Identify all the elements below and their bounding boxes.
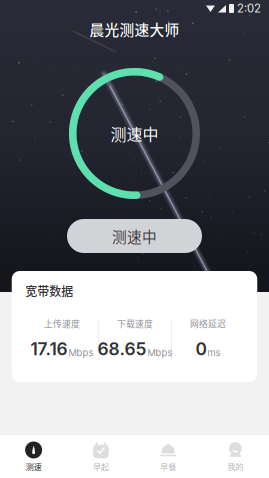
staticText: 测速中 [110, 122, 158, 145]
button[interactable]: 早起 [67, 435, 134, 478]
staticText: 测速中 [112, 225, 157, 247]
staticText: 测速 [26, 461, 42, 472]
staticText: 我的 [227, 461, 243, 472]
staticText: Mbps [68, 347, 93, 358]
staticText: ms [208, 347, 221, 358]
staticText: 68.65 [97, 338, 146, 359]
button[interactable]: 测速 [0, 435, 67, 478]
staticText: 2:02 [237, 2, 261, 15]
button[interactable]: 我的 [202, 435, 269, 478]
staticText: 早起 [93, 461, 109, 472]
staticText: 0 [196, 338, 207, 359]
staticText: 上传速度 [44, 317, 80, 330]
button[interactable]: 测速中 [67, 219, 202, 253]
staticText: 下载速度 [117, 317, 153, 330]
staticText: Mbps [148, 347, 173, 358]
staticText: 17.16 [31, 338, 68, 359]
staticText: 网络延迟 [190, 317, 226, 330]
button[interactable]: 早餐 [134, 435, 202, 478]
staticText: 早餐 [160, 461, 176, 472]
staticText: 宽带数据 [25, 282, 73, 299]
staticText: 晨光测速大师 [89, 18, 179, 40]
